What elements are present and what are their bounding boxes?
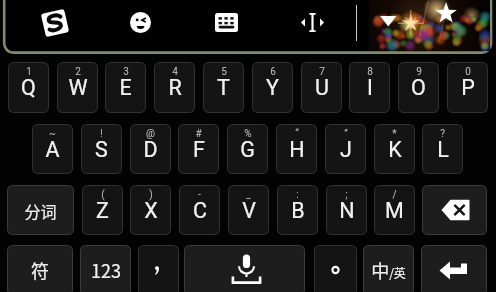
staticText: / — [392, 189, 397, 201]
button[interactable]: - — [179, 185, 220, 235]
button[interactable]: 符 — [7, 245, 73, 292]
staticText: 4 — [172, 66, 178, 78]
staticText: M — [385, 198, 404, 223]
button[interactable]: # — [178, 124, 219, 174]
button[interactable]: 2 — [57, 62, 98, 113]
staticText: J — [340, 137, 352, 162]
staticText: P — [461, 75, 475, 100]
staticText: ? — [440, 128, 445, 140]
staticText: N — [339, 198, 355, 223]
button[interactable]: “ — [276, 124, 317, 174]
button[interactable]: ~ — [32, 124, 73, 174]
staticText: C — [193, 198, 207, 223]
button[interactable]: ? — [422, 124, 463, 174]
staticText: # — [195, 128, 202, 140]
button[interactable]: 3 — [105, 62, 146, 113]
staticText: ” — [344, 128, 348, 140]
button[interactable]: 6 — [252, 62, 293, 113]
staticText: K — [388, 137, 402, 162]
button[interactable]: 5 — [203, 62, 244, 113]
staticText: S — [95, 137, 108, 162]
staticText: X — [144, 198, 158, 223]
button[interactable]: ; — [326, 185, 367, 235]
button[interactable]: 1 — [8, 62, 49, 113]
staticText: U — [315, 75, 329, 100]
staticText: ( — [101, 189, 105, 201]
staticText: 符 — [31, 257, 49, 283]
staticText: H — [289, 137, 305, 162]
staticText: ) — [149, 189, 153, 201]
button[interactable]: 8 — [349, 62, 390, 113]
button[interactable]: 分词 — [7, 185, 74, 235]
staticText: O — [411, 75, 426, 100]
staticText: * — [392, 128, 397, 140]
staticText: 8 — [367, 66, 373, 78]
staticText: L — [437, 137, 449, 162]
button[interactable]: / — [374, 185, 415, 235]
button[interactable]: 7 — [301, 62, 342, 113]
button[interactable]: ( — [82, 185, 123, 235]
staticText: 7 — [319, 66, 325, 78]
staticText: “ — [295, 128, 299, 140]
staticText: 9 — [416, 66, 422, 78]
button[interactable]: Enter — [421, 245, 487, 292]
button[interactable]: Switch keyboard — [210, 5, 243, 40]
staticText: A — [45, 137, 60, 162]
staticText: 123 — [91, 257, 121, 283]
button[interactable]: % — [227, 124, 268, 174]
staticText: ~ — [49, 128, 56, 140]
staticText: T — [217, 75, 230, 100]
staticText: ! — [100, 128, 103, 140]
staticText: % — [244, 128, 252, 140]
button[interactable]: ) — [130, 185, 171, 235]
button[interactable]: Sogou input settings — [38, 5, 72, 40]
button[interactable]: 4 — [154, 62, 195, 113]
staticText: E — [119, 75, 132, 100]
button[interactable]: : — [277, 185, 318, 235]
button[interactable]: ” — [325, 124, 366, 174]
button[interactable]: Move cursor — [296, 5, 329, 40]
staticText: Y — [266, 75, 279, 100]
staticText: 中/英 — [371, 257, 406, 283]
button[interactable]: 中/英 — [363, 245, 414, 292]
staticText: I — [367, 75, 373, 100]
button[interactable]: 0 — [447, 62, 488, 113]
staticText: B — [291, 198, 305, 223]
staticText: 1 — [26, 66, 32, 78]
button[interactable]: Period — [314, 245, 357, 292]
staticText: 3 — [123, 66, 129, 78]
button[interactable]: 123 — [80, 245, 131, 292]
staticText: 分词 — [24, 199, 57, 222]
staticText: 6 — [270, 66, 276, 78]
staticText: R — [168, 75, 182, 100]
staticText: : — [296, 189, 299, 201]
staticText: 2 — [75, 66, 81, 78]
staticText: @ — [146, 128, 155, 140]
staticText: 0 — [465, 66, 471, 78]
button[interactable]: Space — [184, 245, 305, 292]
staticText: D — [143, 137, 158, 162]
staticText: - — [198, 189, 201, 201]
button[interactable]: Delete — [422, 185, 487, 235]
button[interactable]: Comma — [138, 245, 179, 292]
staticText: G — [240, 137, 255, 162]
button[interactable]: @ — [130, 124, 171, 174]
staticText: V — [242, 198, 256, 223]
staticText: F — [193, 137, 205, 162]
button[interactable]: * — [374, 124, 415, 174]
staticText: W — [68, 75, 88, 100]
button[interactable]: ! — [81, 124, 122, 174]
button[interactable]: _ — [228, 185, 269, 235]
button[interactable]: Theme banner — [369, 0, 490, 51]
button[interactable]: Emoji — [124, 5, 157, 40]
staticText: Q — [21, 75, 36, 100]
staticText: _ — [246, 189, 251, 201]
staticText: Z — [96, 198, 109, 223]
staticText: 5 — [221, 66, 227, 78]
button[interactable]: 9 — [398, 62, 439, 113]
staticText: ; — [345, 189, 348, 201]
